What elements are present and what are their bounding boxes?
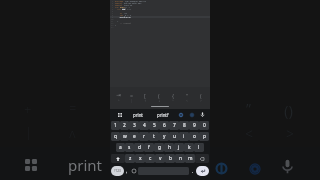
button[interactable]: i (179, 132, 189, 141)
staticText: import (115, 4, 124, 6)
button[interactable]: y (159, 132, 169, 141)
button[interactable]: 7 (169, 121, 179, 130)
staticText: d (138, 144, 141, 151)
button[interactable]: { (166, 92, 180, 103)
staticText: + (118, 98, 120, 102)
staticText: " (186, 92, 189, 99)
button[interactable]: [ (138, 92, 152, 103)
button[interactable]: r (139, 132, 149, 141)
staticText: printf (157, 112, 169, 118)
button[interactable]: ( (194, 92, 208, 103)
staticText: } (115, 20, 119, 22)
button[interactable]: printf (154, 110, 172, 120)
button[interactable]: q (111, 132, 120, 141)
staticText: r (143, 133, 145, 140)
staticText: 0 (203, 122, 206, 129)
button[interactable]: z (125, 154, 135, 163)
staticText: ?123 (114, 169, 121, 173)
button[interactable]: e (129, 132, 139, 141)
button[interactable]: Backspace (195, 154, 209, 163)
staticText: obj (122, 8, 126, 10)
staticText: () (284, 100, 294, 120)
button[interactable]: x (135, 154, 145, 163)
button[interactable]: n (175, 154, 185, 163)
staticText: java.io (124, 4, 133, 6)
staticText: h (168, 144, 171, 151)
staticText: 11 (111, 20, 114, 22)
button[interactable]: w (120, 132, 129, 141)
staticText: ^ (172, 99, 174, 103)
staticText: 3 (112, 4, 114, 6)
button[interactable]: 0 (199, 121, 209, 130)
staticText: kotlin.math.abs (124, 2, 142, 4)
button[interactable]: l (194, 143, 204, 152)
staticText: 1 (114, 122, 117, 129)
button[interactable]: ( (152, 92, 166, 103)
staticText: 2 (123, 122, 126, 129)
button[interactable]: a (116, 143, 125, 152)
staticText: // comment (115, 22, 132, 24)
staticText: 12 (111, 22, 114, 24)
button[interactable]: g (154, 143, 164, 152)
staticText: (a) (124, 12, 128, 14)
staticText: g (158, 144, 161, 151)
button[interactable]: s (125, 143, 134, 152)
staticText: o (193, 133, 196, 140)
staticText: 4 (112, 6, 114, 8)
button[interactable]: 3 (129, 121, 139, 130)
button[interactable]: v (155, 154, 165, 163)
button[interactable]: Settings (187, 110, 196, 119)
staticText: 6 (112, 10, 114, 12)
button[interactable]: k (184, 143, 194, 152)
staticText: 13 (111, 24, 114, 26)
button[interactable]: print (129, 110, 147, 120)
button[interactable]: 8 (179, 121, 189, 130)
button[interactable]: 9 (189, 121, 199, 130)
button[interactable]: u (169, 132, 179, 141)
button[interactable]: t (149, 132, 159, 141)
staticText: , (126, 168, 128, 175)
staticText: m (188, 155, 193, 162)
button[interactable]: Enter (196, 166, 209, 176)
button[interactable]: ⇥ (112, 92, 125, 102)
button[interactable]: Voice input (198, 110, 207, 119)
staticText: 3 (133, 122, 136, 129)
button[interactable]: d (134, 143, 144, 152)
staticText: () { (125, 6, 130, 8)
button[interactable]: Shift (111, 154, 125, 163)
button[interactable]: = (125, 92, 138, 103)
button[interactable]: ?123 (111, 166, 124, 176)
button[interactable]: Emoji (130, 166, 137, 176)
button[interactable]: Translate (176, 110, 185, 119)
button[interactable]: " (180, 92, 194, 103)
button[interactable]: h (164, 143, 174, 152)
staticText: 8 (183, 122, 186, 129)
button[interactable]: Clipboard (116, 111, 123, 118)
button[interactable]: p (199, 132, 209, 141)
button[interactable]: 2 (120, 121, 129, 130)
staticText: u (173, 133, 176, 140)
staticText: n (179, 155, 182, 162)
staticText: t (153, 133, 155, 140)
staticText: println(a) (115, 16, 132, 18)
staticText: print (68, 155, 102, 175)
button[interactable]: 4 (139, 121, 149, 130)
button[interactable]: m (185, 154, 195, 163)
button[interactable]: 6 (159, 121, 169, 130)
button[interactable]: j (174, 143, 184, 152)
staticText: ⇥ (116, 92, 121, 98)
button[interactable]: b (165, 154, 175, 163)
button[interactable]: , (124, 166, 130, 176)
button[interactable]: o (189, 132, 199, 141)
button[interactable]: c (145, 154, 155, 163)
button[interactable]: 5 (149, 121, 159, 130)
button[interactable]: f (144, 143, 154, 152)
staticText: ( (158, 92, 160, 99)
staticText: ↓ (158, 99, 161, 103)
button[interactable]: . (190, 166, 196, 176)
button[interactable]: 1 (111, 121, 120, 130)
